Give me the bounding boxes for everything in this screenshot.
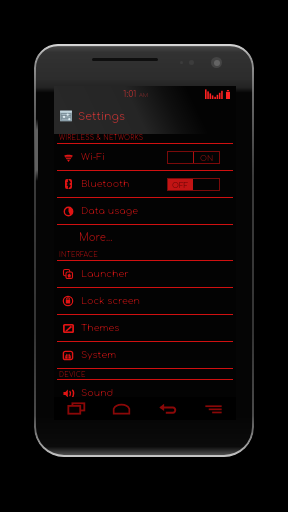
staticText: DEVICE (59, 371, 86, 378)
button[interactable]: Sound (54, 380, 236, 407)
staticText: System (81, 350, 117, 361)
button[interactable]: Settings (59, 101, 236, 131)
staticText: OFF (172, 181, 189, 189)
button[interactable]: More... (79, 225, 236, 249)
button[interactable]: Back (144, 397, 190, 420)
staticText: 1:01 (123, 89, 137, 99)
staticText: Sound (81, 388, 114, 399)
staticText: More... (79, 232, 113, 243)
button[interactable]: Menu (190, 397, 236, 420)
button[interactable]: Themes (54, 315, 236, 342)
staticText: Settings (78, 110, 125, 122)
button[interactable]: Wi-Fi (54, 144, 236, 171)
staticText: Bluetooth (81, 179, 130, 190)
button[interactable]: Home (99, 397, 144, 420)
staticText: Data usage (81, 206, 139, 217)
staticText: Lock screen (81, 296, 140, 307)
button[interactable]: Recent apps (54, 397, 99, 420)
staticText: Launcher (81, 269, 129, 280)
staticText: Wi-Fi (81, 152, 106, 163)
button[interactable]: Data usage (54, 198, 236, 225)
button[interactable]: Launcher (54, 261, 236, 288)
button[interactable]: Lock screen (54, 288, 236, 315)
button[interactable]: Bluetooth (54, 171, 236, 198)
staticText: INTERFACE (59, 251, 98, 258)
staticText: Themes (81, 323, 120, 334)
staticText: AM (139, 92, 149, 98)
staticText: ON (200, 154, 214, 162)
button[interactable]: System (54, 342, 236, 369)
staticText: WIRELESS & NETWORKS (59, 134, 144, 141)
